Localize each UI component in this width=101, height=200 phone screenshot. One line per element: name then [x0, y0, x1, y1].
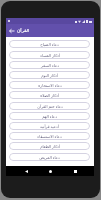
button[interactable]: أذكار الطعام [9, 142, 90, 150]
button[interactable]: دعاء السفر [9, 61, 90, 69]
button[interactable]: أذكار المساء [9, 51, 90, 59]
button[interactable]: Back [21, 166, 31, 176]
button[interactable]: Home [45, 166, 55, 176]
button[interactable]: دعاء الاستخارة [9, 81, 90, 89]
button[interactable]: دعاء المريض [9, 153, 90, 161]
staticText: دعاء الاستخارة [38, 83, 62, 88]
staticText: دعاء الاستسقاء [37, 134, 62, 139]
staticText: دعاء الصباح [40, 42, 59, 47]
staticText: أذكار النوم [41, 73, 58, 78]
staticText: أذكار المساء [40, 53, 60, 58]
staticText: أدعية قرآنية [40, 124, 59, 129]
button[interactable]: دعاء الصباح [9, 40, 90, 48]
staticText: القرآن [17, 28, 30, 33]
button[interactable]: أذكار النوم [9, 71, 90, 79]
button[interactable]: دعاء الهم [9, 112, 90, 120]
staticText: دعاء الهم [42, 114, 57, 119]
button[interactable]: أذكار الصلاة [9, 91, 90, 99]
button[interactable]: Recents [70, 166, 80, 176]
staticText: أذكار الصلاة [40, 93, 59, 98]
staticText: أذكار الطعام [40, 144, 60, 149]
staticText: دعاء السفر [41, 63, 59, 68]
button[interactable]: دعاء الاستسقاء [9, 132, 90, 140]
button[interactable]: Back [6, 24, 17, 37]
button[interactable]: أدعية قرآنية [9, 122, 90, 130]
staticText: دعاء ختم القرآن [37, 104, 63, 109]
button[interactable]: دعاء ختم القرآن [9, 102, 90, 110]
staticText: دعاء المريض [39, 155, 60, 160]
